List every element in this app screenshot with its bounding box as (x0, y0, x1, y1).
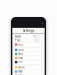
button[interactable]: Note (14, 65, 43, 69)
button[interactable]: Plan (14, 38, 43, 42)
staticText: Acct (18, 43, 23, 46)
button[interactable]: Mail (14, 70, 43, 73)
staticText: Mine (33, 35, 40, 38)
button[interactable]: Snd (14, 52, 43, 56)
staticText: Name (15, 35, 22, 38)
staticText: Dsp (18, 56, 23, 60)
staticText: Gen (18, 48, 24, 52)
staticText: Safa (18, 74, 22, 75)
button[interactable]: Acct (14, 43, 43, 46)
staticText: Prv (18, 60, 22, 64)
staticText: Mail (18, 70, 23, 73)
button[interactable]: Name (14, 34, 43, 38)
button[interactable]: Dsp (14, 56, 43, 60)
staticText: Plan (15, 39, 21, 42)
staticText: Free (34, 39, 40, 42)
staticText: Snd (18, 52, 23, 56)
staticText: Note (18, 66, 25, 69)
staticText: Settings (23, 29, 34, 32)
button[interactable]: Gen (14, 48, 43, 52)
button[interactable]: Safa (14, 74, 43, 75)
button[interactable]: Prv (14, 60, 43, 64)
